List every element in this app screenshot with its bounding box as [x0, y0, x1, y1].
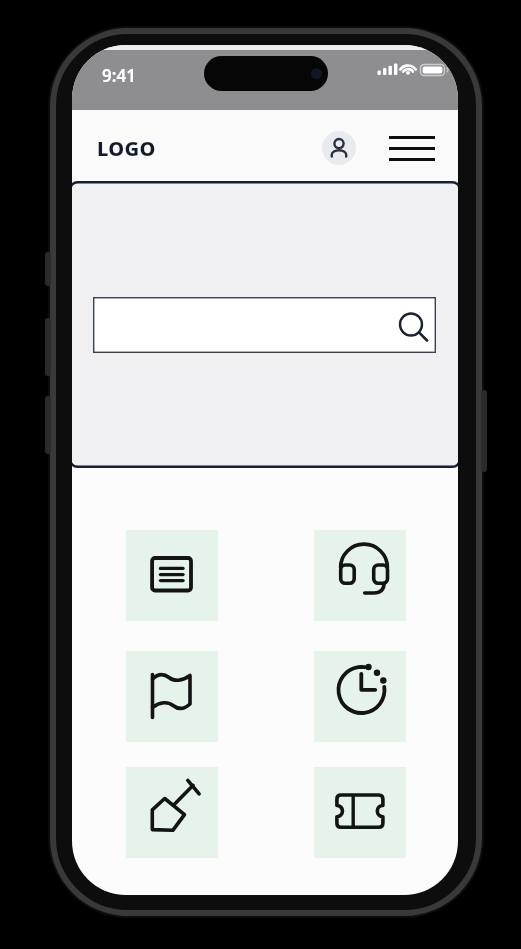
button[interactable] [126, 767, 218, 858]
button[interactable] [126, 530, 218, 621]
button[interactable] [387, 131, 437, 167]
button[interactable] [93, 297, 436, 353]
staticText: 9:41 [102, 64, 136, 87]
staticText: LOGO [97, 135, 156, 162]
button[interactable] [314, 530, 406, 621]
button[interactable] [314, 651, 406, 742]
button[interactable] [314, 767, 406, 858]
button[interactable] [126, 651, 218, 742]
button[interactable] [322, 131, 356, 165]
